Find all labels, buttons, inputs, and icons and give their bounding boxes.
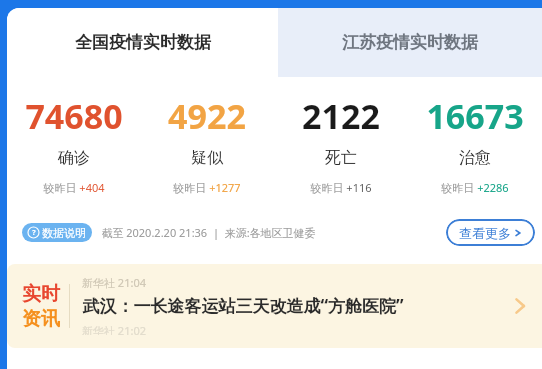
staticText: 16673 [426,93,524,139]
staticText: 查看更多 [459,225,511,241]
staticText: 武汉：一长途客运站三天改造成“方舱医院” [82,294,404,317]
staticText: 实时 [22,282,60,306]
staticText: 较昨日 +2286 [441,180,509,195]
button[interactable]: 江苏疫情实时数据 [278,8,542,77]
staticText: 较昨日 +116 [310,180,372,195]
staticText: 数据说明 [42,226,86,240]
staticText: 较昨日 +1277 [173,180,241,195]
staticText: 截至 2020.2.20 21:36 | 来源:各地区卫健委 [101,225,316,240]
staticText: 资讯 [22,307,60,331]
staticText: 全国疫情实时数据 [75,32,211,53]
staticText: 疑似 [191,148,223,168]
staticText: ? [32,228,36,238]
staticText: 江苏疫情实时数据 [342,32,478,53]
button[interactable]: More news [506,292,534,320]
button[interactable]: ? [22,223,92,242]
button[interactable]: 16673 [408,93,542,195]
staticText: 新华社 21:02 [82,323,146,335]
button[interactable]: 4922 [140,93,274,195]
staticText: 治愈 [459,148,491,168]
staticText: 确诊 [58,148,90,168]
button[interactable]: 查看更多 [446,219,535,246]
staticText: 4922 [168,93,246,139]
staticText: 2122 [302,93,380,139]
button[interactable]: 2122 [274,93,408,195]
staticText: 死亡 [325,148,357,168]
button[interactable]: 全国疫情实时数据 [7,8,278,77]
staticText: 新华社 21:04 [82,275,146,289]
staticText: 74680 [25,93,123,139]
button[interactable]: 74680 [7,93,140,195]
staticText: 较昨日 +404 [43,180,105,195]
button[interactable]: 实时 [7,264,542,348]
